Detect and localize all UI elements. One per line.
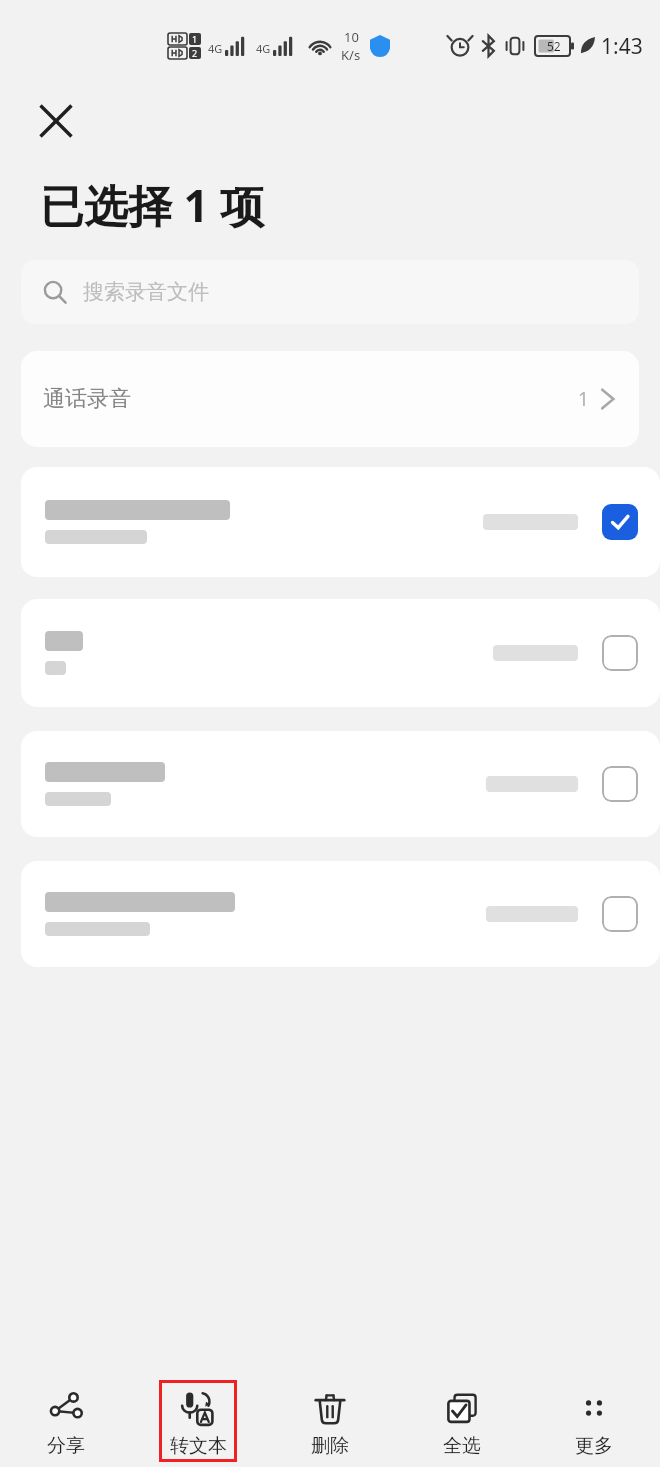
staticText: 1:43	[601, 32, 643, 61]
staticText: 1	[578, 386, 589, 412]
staticText: 全选	[443, 1434, 481, 1458]
button[interactable]: 搜索录音文件	[21, 260, 639, 324]
staticText: 更多	[575, 1434, 613, 1458]
button[interactable]: 选择	[21, 861, 660, 967]
button[interactable]: 选择	[600, 764, 640, 804]
button[interactable]: 选择	[600, 502, 640, 542]
staticText: 转文本	[170, 1434, 227, 1458]
staticText: 4G	[256, 41, 271, 56]
button[interactable]: 选择	[21, 467, 660, 577]
staticText: 4G	[208, 41, 223, 56]
staticText: 2	[192, 47, 198, 59]
staticText: 52	[547, 38, 561, 54]
button[interactable]: 全选	[423, 1380, 501, 1462]
button[interactable]: 更多	[555, 1380, 633, 1462]
staticText: 分享	[47, 1434, 85, 1458]
button[interactable]: 转文本	[159, 1380, 237, 1462]
staticText: 1	[192, 33, 198, 45]
staticText: 删除	[311, 1434, 349, 1458]
button[interactable]: 删除	[291, 1380, 369, 1462]
button[interactable]: 选择	[600, 633, 640, 673]
button[interactable]: 通话录音	[21, 351, 639, 447]
staticText: 10	[344, 28, 359, 46]
staticText: 通话录音	[43, 385, 131, 413]
button[interactable]: 选择	[21, 731, 660, 837]
staticText: 搜索录音文件	[83, 279, 209, 305]
button[interactable]: 分享	[27, 1380, 105, 1462]
staticText: 已选择 1 项	[40, 175, 265, 235]
button[interactable]: 关闭	[26, 92, 86, 150]
button[interactable]: 选择	[600, 894, 640, 934]
staticText: K/s	[341, 46, 361, 64]
button[interactable]: 选择	[21, 599, 660, 707]
